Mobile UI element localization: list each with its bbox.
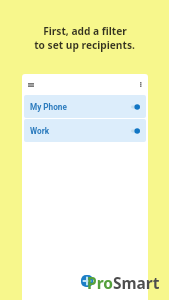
button[interactable]: Toggle Work — [130, 123, 140, 139]
staticText: ProSmart — [87, 272, 160, 293]
button[interactable]: More options — [133, 74, 148, 95]
button[interactable]: Work — [24, 119, 146, 142]
staticText: My Phone — [30, 102, 67, 112]
button[interactable]: My Phone — [24, 95, 146, 118]
staticText: First, add a filter — [43, 24, 127, 38]
button[interactable]: Toggle My Phone — [130, 99, 140, 115]
staticText: to set up recipients. — [34, 38, 135, 52]
staticText: Work — [30, 126, 50, 136]
button[interactable]: Navigation menu — [22, 74, 40, 95]
